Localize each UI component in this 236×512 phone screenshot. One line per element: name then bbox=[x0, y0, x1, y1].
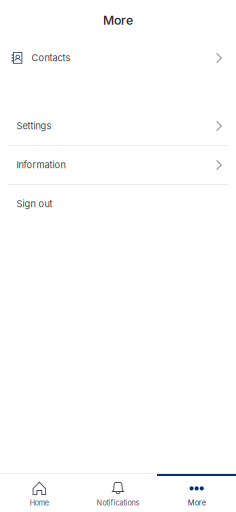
staticText: Home bbox=[30, 498, 49, 507]
button[interactable]: Information bbox=[0, 146, 236, 184]
staticText: More bbox=[103, 13, 133, 28]
staticText: Information bbox=[16, 159, 65, 170]
staticText: Sign out bbox=[16, 198, 52, 209]
button[interactable]: Sign out bbox=[0, 185, 236, 223]
button[interactable]: Notifications bbox=[79, 473, 157, 512]
staticText: Notifications bbox=[96, 498, 139, 507]
button[interactable]: More bbox=[157, 473, 236, 512]
staticText: Contacts bbox=[31, 52, 70, 63]
staticText: Settings bbox=[16, 120, 51, 131]
staticText: More bbox=[188, 498, 206, 507]
button[interactable]: Contacts bbox=[0, 38, 236, 77]
button[interactable]: Home bbox=[0, 473, 79, 512]
button[interactable]: Settings bbox=[0, 107, 236, 145]
